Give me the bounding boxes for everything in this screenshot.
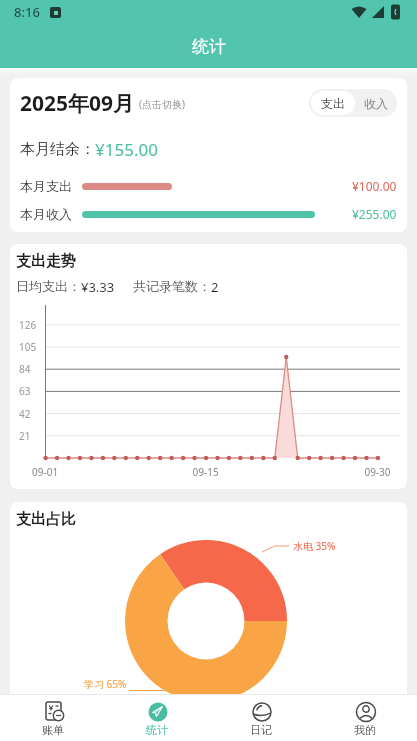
staticText: 支出 [321,96,345,111]
button[interactable]: 收入 [355,89,397,117]
staticText: 统计 [192,36,226,57]
button[interactable]: 账单 [0,695,105,741]
staticText: 我的 [354,723,376,737]
staticText: 日记 [250,723,272,737]
staticText: 2025年09月 [20,89,135,118]
staticText: 本月收入 [20,206,72,222]
staticText: ¥100.00 [352,178,397,194]
staticText: 8:16 [14,3,40,21]
staticText: (点击切换) [139,97,185,111]
button[interactable]: 日记 [209,695,313,741]
staticText: 本月支出 [20,178,72,194]
staticText: 收入 [364,96,388,111]
staticText: 共记录笔数： [133,278,211,294]
staticText: ¥155.00 [95,138,158,161]
staticText: ¥3.33 [81,278,115,296]
button[interactable]: 我的 [313,695,417,741]
staticText: 支出占比 [16,510,76,529]
button[interactable]: 2025年09月 [20,89,185,118]
button[interactable]: 统计 [105,695,209,741]
staticText: 统计 [146,723,168,737]
staticText: 支出走势 [16,252,76,271]
staticText: 2 [211,278,219,296]
staticText: 账单 [42,723,64,737]
staticText: 日均支出： [16,278,81,294]
button[interactable]: 支出 [311,91,355,115]
staticText: ¥255.00 [352,206,397,222]
staticText: 本月结余： [20,140,95,159]
